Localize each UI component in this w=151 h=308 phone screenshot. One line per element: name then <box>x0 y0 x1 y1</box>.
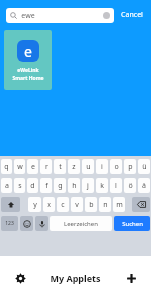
staticText: Leerzeichen <box>64 220 98 228</box>
staticText: eWeLink <box>17 67 39 74</box>
button[interactable]: i <box>96 159 108 174</box>
staticText: z <box>72 162 76 172</box>
staticText: e <box>24 42 32 61</box>
button[interactable]: ä <box>138 178 150 193</box>
button[interactable]: My Applets <box>30 272 121 284</box>
button[interactable]: Emoji <box>20 216 33 231</box>
button[interactable]: w <box>14 159 25 174</box>
staticText: ö <box>128 181 133 191</box>
staticText: Suchen <box>122 220 143 228</box>
button[interactable]: t <box>54 159 66 174</box>
staticText: e <box>31 162 35 172</box>
button[interactable]: Backspace <box>132 197 150 212</box>
button[interactable]: j <box>82 178 94 193</box>
button[interactable]: f <box>40 178 52 193</box>
staticText: r <box>45 162 48 172</box>
staticText: o <box>114 162 119 172</box>
button[interactable]: p <box>124 159 136 174</box>
staticText: t <box>59 162 62 172</box>
staticText: p <box>128 162 133 172</box>
button[interactable]: ü <box>138 159 150 174</box>
button[interactable]: Cancel <box>119 8 145 22</box>
staticText: f <box>45 181 48 191</box>
staticText: ä <box>142 181 146 191</box>
button[interactable]: ö <box>124 178 136 193</box>
staticText: a <box>5 181 9 191</box>
staticText: ewe <box>21 11 35 21</box>
button[interactable]: e <box>27 159 38 174</box>
staticText: w <box>17 162 23 172</box>
staticText: y <box>33 200 37 210</box>
staticText: k <box>100 181 104 191</box>
button[interactable]: u <box>82 159 94 174</box>
staticText: m <box>116 200 123 210</box>
staticText: g <box>58 181 63 191</box>
button[interactable]: ewe <box>6 8 114 23</box>
staticText: My Applets <box>50 272 101 284</box>
button[interactable]: c <box>57 197 69 212</box>
button[interactable]: v <box>71 197 83 212</box>
button[interactable]: r <box>40 159 52 174</box>
staticText: i <box>101 162 103 172</box>
button[interactable]: Clear search <box>103 12 110 19</box>
button[interactable]: g <box>54 178 66 193</box>
button[interactable]: Settings <box>10 268 30 288</box>
button[interactable]: q <box>1 159 12 174</box>
button[interactable]: o <box>110 159 122 174</box>
button[interactable]: z <box>68 159 80 174</box>
button[interactable]: b <box>85 197 97 212</box>
button[interactable]: Suchen <box>114 216 150 231</box>
staticText: Smart Home <box>12 75 44 82</box>
button[interactable]: x <box>43 197 55 212</box>
button[interactable]: e <box>4 30 52 90</box>
button[interactable]: k <box>96 178 108 193</box>
button[interactable]: Voice input <box>35 216 48 231</box>
staticText: d <box>30 181 35 191</box>
button[interactable]: Shift <box>1 197 20 212</box>
staticText: l <box>115 181 117 191</box>
button[interactable]: h <box>68 178 80 193</box>
staticText: v <box>75 200 79 210</box>
staticText: s <box>18 181 22 191</box>
staticText: ü <box>142 162 147 172</box>
button[interactable]: s <box>14 178 25 193</box>
staticText: 123 <box>5 220 14 227</box>
button[interactable]: 123 <box>1 216 18 231</box>
staticText: c <box>61 200 65 210</box>
button[interactable]: Leerzeichen <box>50 216 112 231</box>
button[interactable]: l <box>110 178 122 193</box>
staticText: u <box>86 162 91 172</box>
staticText: j <box>87 181 89 191</box>
button[interactable]: d <box>27 178 38 193</box>
staticText: Cancel <box>121 10 143 20</box>
staticText: x <box>47 200 51 210</box>
button[interactable]: m <box>113 197 125 212</box>
button[interactable]: n <box>99 197 111 212</box>
button[interactable]: y <box>28 197 41 212</box>
button[interactable]: a <box>1 178 12 193</box>
staticText: q <box>4 162 9 172</box>
staticText: h <box>72 181 77 191</box>
staticText: n <box>103 200 108 210</box>
staticText: b <box>89 200 94 210</box>
button[interactable]: Add applet <box>121 268 141 288</box>
